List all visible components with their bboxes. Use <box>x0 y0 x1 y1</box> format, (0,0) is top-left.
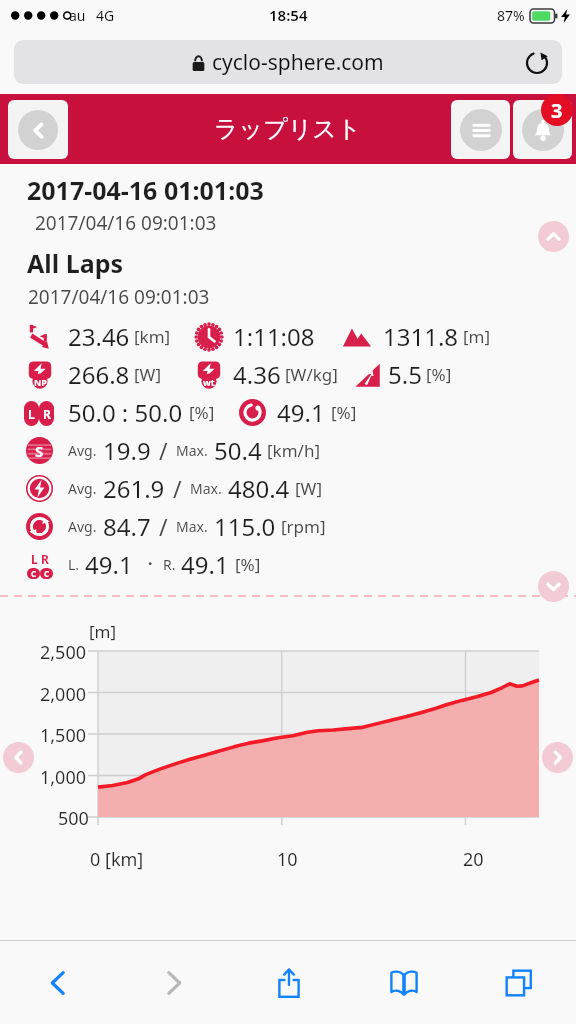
button[interactable]: Tabs <box>461 941 576 1024</box>
staticText: L. <box>68 555 80 574</box>
staticText: R <box>41 551 49 567</box>
staticText: [%] <box>189 401 215 424</box>
staticText: 261.9 <box>103 472 165 505</box>
button[interactable]: Previous chart <box>3 742 34 773</box>
staticText: [m] <box>89 620 117 643</box>
staticText: R <box>43 406 51 422</box>
staticText: 480.4 <box>228 472 290 505</box>
staticText: 5.5 <box>388 358 422 391</box>
staticText: 49.1 <box>277 396 325 429</box>
staticText: All Laps <box>27 246 124 280</box>
staticText: [W/kg] <box>285 363 338 386</box>
staticText: 50.0 : 50.0 <box>68 396 183 429</box>
staticText: 115.0 <box>214 510 276 543</box>
staticText: NP <box>34 376 47 388</box>
staticText: [rpm] <box>281 515 326 538</box>
staticText: 2,500 <box>40 640 87 665</box>
staticText: C <box>44 568 50 579</box>
staticText: 2017-04-16 01:01:03 <box>27 173 264 207</box>
button[interactable]: Bookmarks <box>346 941 461 1024</box>
staticText: cyclo-sphere.com <box>212 48 384 77</box>
staticText: 49.1 <box>85 548 133 581</box>
staticText: [W] <box>295 477 322 500</box>
staticText: [m] <box>463 325 491 348</box>
button[interactable]: Back <box>0 941 116 1024</box>
staticText: 1,500 <box>40 723 87 748</box>
staticText: L <box>28 406 35 422</box>
staticText: 266.8 <box>68 358 130 391</box>
other: Reload <box>525 50 549 74</box>
staticText: / <box>159 511 168 542</box>
staticText: Avg. <box>68 517 97 536</box>
staticText: L <box>31 551 38 567</box>
button[interactable]: Next chart <box>542 742 573 773</box>
staticText: 4G <box>96 6 115 25</box>
staticText: [km/h] <box>267 439 320 462</box>
staticText: R. <box>163 555 176 574</box>
staticText: S <box>35 441 44 461</box>
staticText: Avg. <box>68 479 97 498</box>
staticText: 49.1 <box>181 548 229 581</box>
staticText: Max. <box>190 479 222 498</box>
staticText: ・ <box>141 553 159 576</box>
staticText: / <box>159 435 168 466</box>
staticText: C <box>31 568 37 579</box>
staticText: 20 <box>463 847 484 872</box>
staticText: au <box>69 6 86 25</box>
button[interactable]: cyclo-sphere.com <box>14 40 562 84</box>
button[interactable]: Scroll down <box>538 571 569 602</box>
staticText: 2017/04/16 09:01:03 <box>28 284 210 310</box>
staticText: 2017/04/16 09:01:03 <box>35 210 217 236</box>
button[interactable]: Notifications <box>513 100 572 159</box>
staticText: 84.7 <box>103 510 151 543</box>
staticText: [W] <box>134 363 161 386</box>
staticText: / <box>173 473 182 504</box>
staticText: wt <box>203 376 215 388</box>
staticText: Max. <box>176 441 208 460</box>
staticText: 23.46 <box>68 320 130 353</box>
staticText: Avg. <box>68 441 97 460</box>
staticText: 87% <box>497 6 525 25</box>
staticText: 18:54 <box>269 5 308 25</box>
staticText: [%] <box>235 553 261 576</box>
staticText: ラップリスト <box>214 114 362 144</box>
staticText: 3 <box>551 97 563 124</box>
staticText: Max. <box>176 517 208 536</box>
staticText: 4.36 <box>233 358 281 391</box>
button[interactable]: Menu <box>451 100 510 159</box>
staticText: 500 <box>58 806 89 831</box>
staticText: 50.4 <box>214 434 262 467</box>
staticText: 2,000 <box>40 682 87 707</box>
button[interactable]: Share <box>231 941 346 1024</box>
staticText: [%] <box>426 363 452 386</box>
staticText: [km] <box>134 325 171 348</box>
button[interactable]: Back <box>8 100 68 159</box>
button[interactable]: Forward <box>116 941 231 1024</box>
staticText: 1311.8 <box>383 320 459 353</box>
staticText: 1,000 <box>40 765 87 790</box>
staticText: 10 <box>277 847 298 872</box>
staticText: [%] <box>331 401 357 424</box>
staticText: 19.9 <box>103 434 151 467</box>
button[interactable]: Scroll up <box>538 221 569 252</box>
staticText: 1:11:08 <box>233 320 315 353</box>
staticText: 0 [km] <box>90 847 144 872</box>
